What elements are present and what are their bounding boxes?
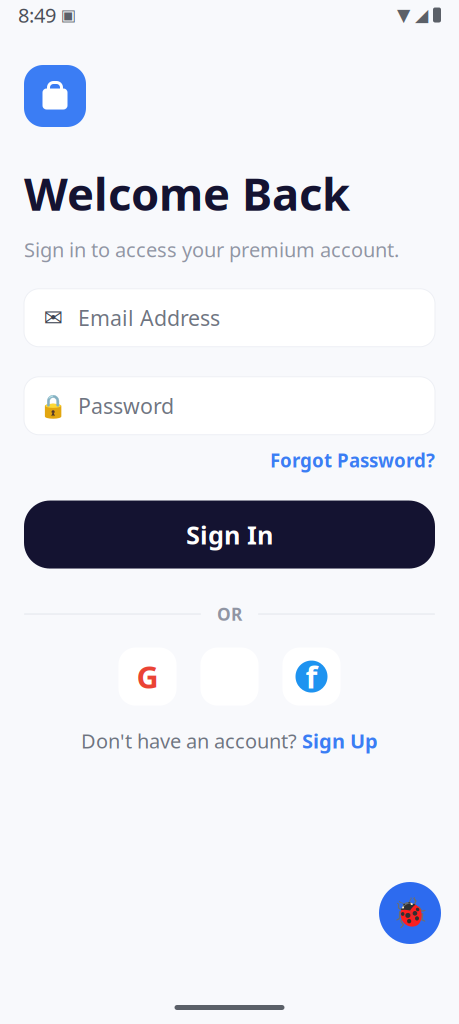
staticText: 🔒: [39, 393, 67, 419]
staticText: f: [305, 656, 317, 697]
button[interactable]: Sign in with Google: [118, 648, 176, 706]
staticText: Welcome Back: [24, 163, 350, 223]
button[interactable]: Debug: [379, 882, 441, 944]
button[interactable]: ✉: [24, 289, 435, 347]
staticText: OR: [217, 602, 242, 625]
button[interactable]: Sign in with Facebook: [282, 648, 340, 706]
staticText: Don't have an account?: [81, 728, 302, 754]
staticText: Email Address: [78, 304, 220, 332]
staticText: ◢: [415, 5, 428, 25]
staticText: Password: [78, 392, 174, 420]
button[interactable]: 🔒: [24, 377, 435, 435]
staticText: Sign In: [186, 518, 273, 551]
staticText: Forgot Password?: [270, 448, 435, 473]
button[interactable]: Forgot Password?: [270, 444, 435, 477]
staticText: ▣: [56, 6, 76, 24]
staticText: Sign Up: [302, 728, 378, 754]
staticText: ✉: [43, 305, 62, 331]
staticText: G: [136, 656, 158, 697]
staticText: 8:49: [18, 2, 56, 28]
button[interactable]: Sign In: [24, 500, 435, 568]
staticText: Sign in to access your premium account.: [24, 236, 399, 263]
staticText: ▼: [397, 5, 410, 25]
button[interactable]: Sign Up: [302, 728, 378, 754]
staticText: 🐞: [391, 896, 428, 930]
